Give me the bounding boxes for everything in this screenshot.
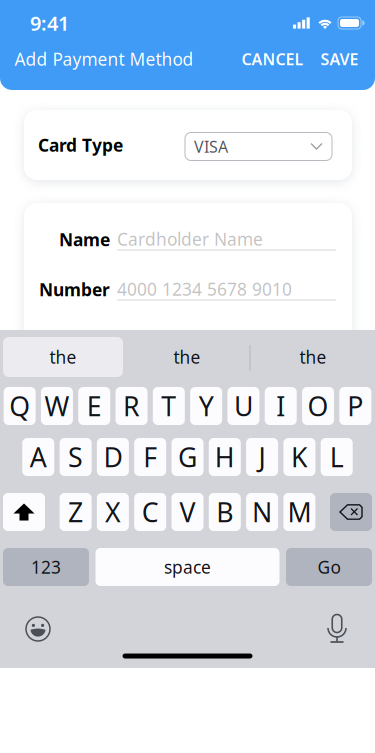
button[interactable]: SAVE xyxy=(313,40,365,78)
button[interactable]: VISA xyxy=(185,131,332,159)
staticText: T xyxy=(161,388,176,424)
button[interactable]: 123 xyxy=(3,548,89,586)
button[interactable]: W xyxy=(41,387,73,425)
button[interactable]: Y xyxy=(190,387,222,425)
button[interactable]: R xyxy=(115,387,147,425)
staticText: G xyxy=(178,439,197,475)
button[interactable]: B xyxy=(209,493,241,531)
button[interactable]: N xyxy=(246,493,278,531)
button[interactable]: the xyxy=(3,337,123,377)
staticText: Number xyxy=(39,278,110,301)
staticText: Cardholder Name xyxy=(117,227,263,250)
button[interactable]: D xyxy=(97,438,129,476)
button[interactable]: V xyxy=(171,493,203,531)
button[interactable]: C xyxy=(134,493,166,531)
button[interactable]: O xyxy=(302,387,334,425)
button[interactable]: H xyxy=(209,438,241,476)
button[interactable]: the xyxy=(125,337,249,377)
button[interactable]: J xyxy=(246,438,278,476)
staticText: M xyxy=(287,494,311,530)
staticText: V xyxy=(179,494,195,530)
staticText: the xyxy=(49,345,76,368)
button[interactable]: X xyxy=(97,493,129,531)
staticText: F xyxy=(143,439,157,475)
staticText: C xyxy=(142,494,159,530)
staticText: the xyxy=(173,345,200,368)
staticText: Q xyxy=(9,388,30,424)
staticText: I xyxy=(276,388,285,424)
staticText: Add Payment Method xyxy=(14,47,193,70)
button[interactable]: E xyxy=(78,387,110,425)
staticText: O xyxy=(308,388,329,424)
button[interactable]: M xyxy=(283,493,315,531)
staticText: A xyxy=(30,439,47,475)
button[interactable]: L xyxy=(321,438,353,476)
button[interactable]: Emoji keyboard xyxy=(16,607,60,651)
staticText: R xyxy=(123,388,140,424)
staticText: E xyxy=(87,388,102,424)
staticText: J xyxy=(259,439,266,475)
staticText: N xyxy=(252,494,272,530)
staticText: B xyxy=(216,494,233,530)
button[interactable]: the xyxy=(251,337,375,377)
button[interactable]: Z xyxy=(60,493,92,531)
button[interactable]: Shift xyxy=(3,493,45,531)
button[interactable]: S xyxy=(60,438,92,476)
staticText: X xyxy=(105,494,121,530)
staticText: CANCEL xyxy=(241,48,303,70)
staticText: K xyxy=(291,439,308,475)
staticText: space xyxy=(164,555,211,578)
button[interactable]: A xyxy=(22,438,54,476)
staticText: Card Type xyxy=(38,133,123,156)
button[interactable]: F xyxy=(134,438,166,476)
button[interactable]: U xyxy=(227,387,259,425)
staticText: the xyxy=(299,345,326,368)
staticText: H xyxy=(215,439,235,475)
button[interactable]: Delete xyxy=(330,493,372,531)
staticText: SAVE xyxy=(320,48,358,70)
staticText: Z xyxy=(68,494,83,530)
staticText: U xyxy=(234,388,253,424)
staticText: Name xyxy=(59,228,110,251)
button[interactable]: K xyxy=(283,438,315,476)
staticText: D xyxy=(103,439,122,475)
staticText: Go xyxy=(317,555,340,578)
staticText: 4000 1234 5678 9010 xyxy=(117,277,292,300)
staticText: 123 xyxy=(31,555,61,578)
button[interactable]: space xyxy=(95,548,279,586)
button[interactable]: G xyxy=(171,438,203,476)
button[interactable]: CANCEL xyxy=(234,40,310,78)
staticText: VISA xyxy=(194,136,228,157)
button[interactable]: I xyxy=(265,387,297,425)
staticText: L xyxy=(330,439,344,475)
staticText: P xyxy=(347,388,363,424)
button[interactable]: Q xyxy=(4,387,36,425)
button[interactable]: Dictate xyxy=(315,607,359,651)
staticText: Y xyxy=(199,388,214,424)
staticText: S xyxy=(68,439,83,475)
button[interactable]: P xyxy=(339,387,371,425)
button[interactable]: Go xyxy=(286,548,372,586)
button[interactable]: T xyxy=(153,387,185,425)
staticText: 9:41 xyxy=(30,10,69,36)
staticText: W xyxy=(44,388,69,424)
